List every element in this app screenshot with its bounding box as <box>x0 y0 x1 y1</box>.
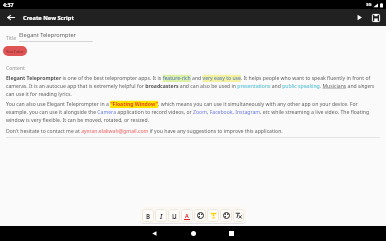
staticText: Elegant Teleprompter is one of the best … <box>6 75 380 98</box>
button[interactable]: Clear formatting <box>233 209 244 222</box>
button[interactable]: Recents <box>224 226 238 241</box>
staticText: Elegant Teleprompter <box>19 31 76 39</box>
staticText: Title <box>6 35 16 42</box>
button[interactable]: Bold <box>142 209 154 222</box>
button[interactable]: Back <box>0 9 21 26</box>
staticText: Create New Script <box>23 14 74 22</box>
staticText: 4:37 <box>3 1 14 8</box>
button[interactable]: Save <box>366 9 386 26</box>
button[interactable]: Underline <box>168 209 180 222</box>
staticText: Don't hesitate to contact me at ayman.el… <box>6 128 283 135</box>
staticText: U <box>172 212 177 220</box>
staticText: 3G <box>366 2 372 8</box>
button[interactable]: YouTube <box>3 46 27 56</box>
button[interactable]: Text color palette <box>194 209 206 222</box>
button[interactable]: Text color <box>181 209 193 222</box>
staticText: A <box>185 212 189 219</box>
staticText: Content <box>6 65 25 72</box>
staticText: I <box>160 212 163 220</box>
button[interactable]: Highlight <box>207 209 219 222</box>
staticText: YouTube <box>6 48 24 54</box>
button[interactable]: Highlight color palette <box>220 209 232 222</box>
button[interactable]: Italic <box>155 209 167 222</box>
button[interactable]: Play <box>353 9 366 26</box>
staticText: You can also use Elegant Teleprompter in… <box>6 101 380 124</box>
button[interactable]: Back <box>147 226 161 241</box>
button[interactable]: Home <box>186 226 200 241</box>
staticText: B <box>146 212 151 220</box>
